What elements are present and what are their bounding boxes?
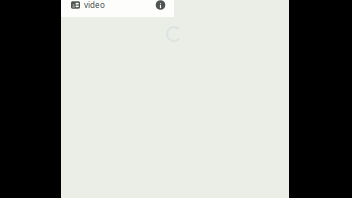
button[interactable]: video <box>61 0 147 10</box>
button[interactable]: Info <box>147 0 174 10</box>
staticText: video <box>84 0 105 10</box>
